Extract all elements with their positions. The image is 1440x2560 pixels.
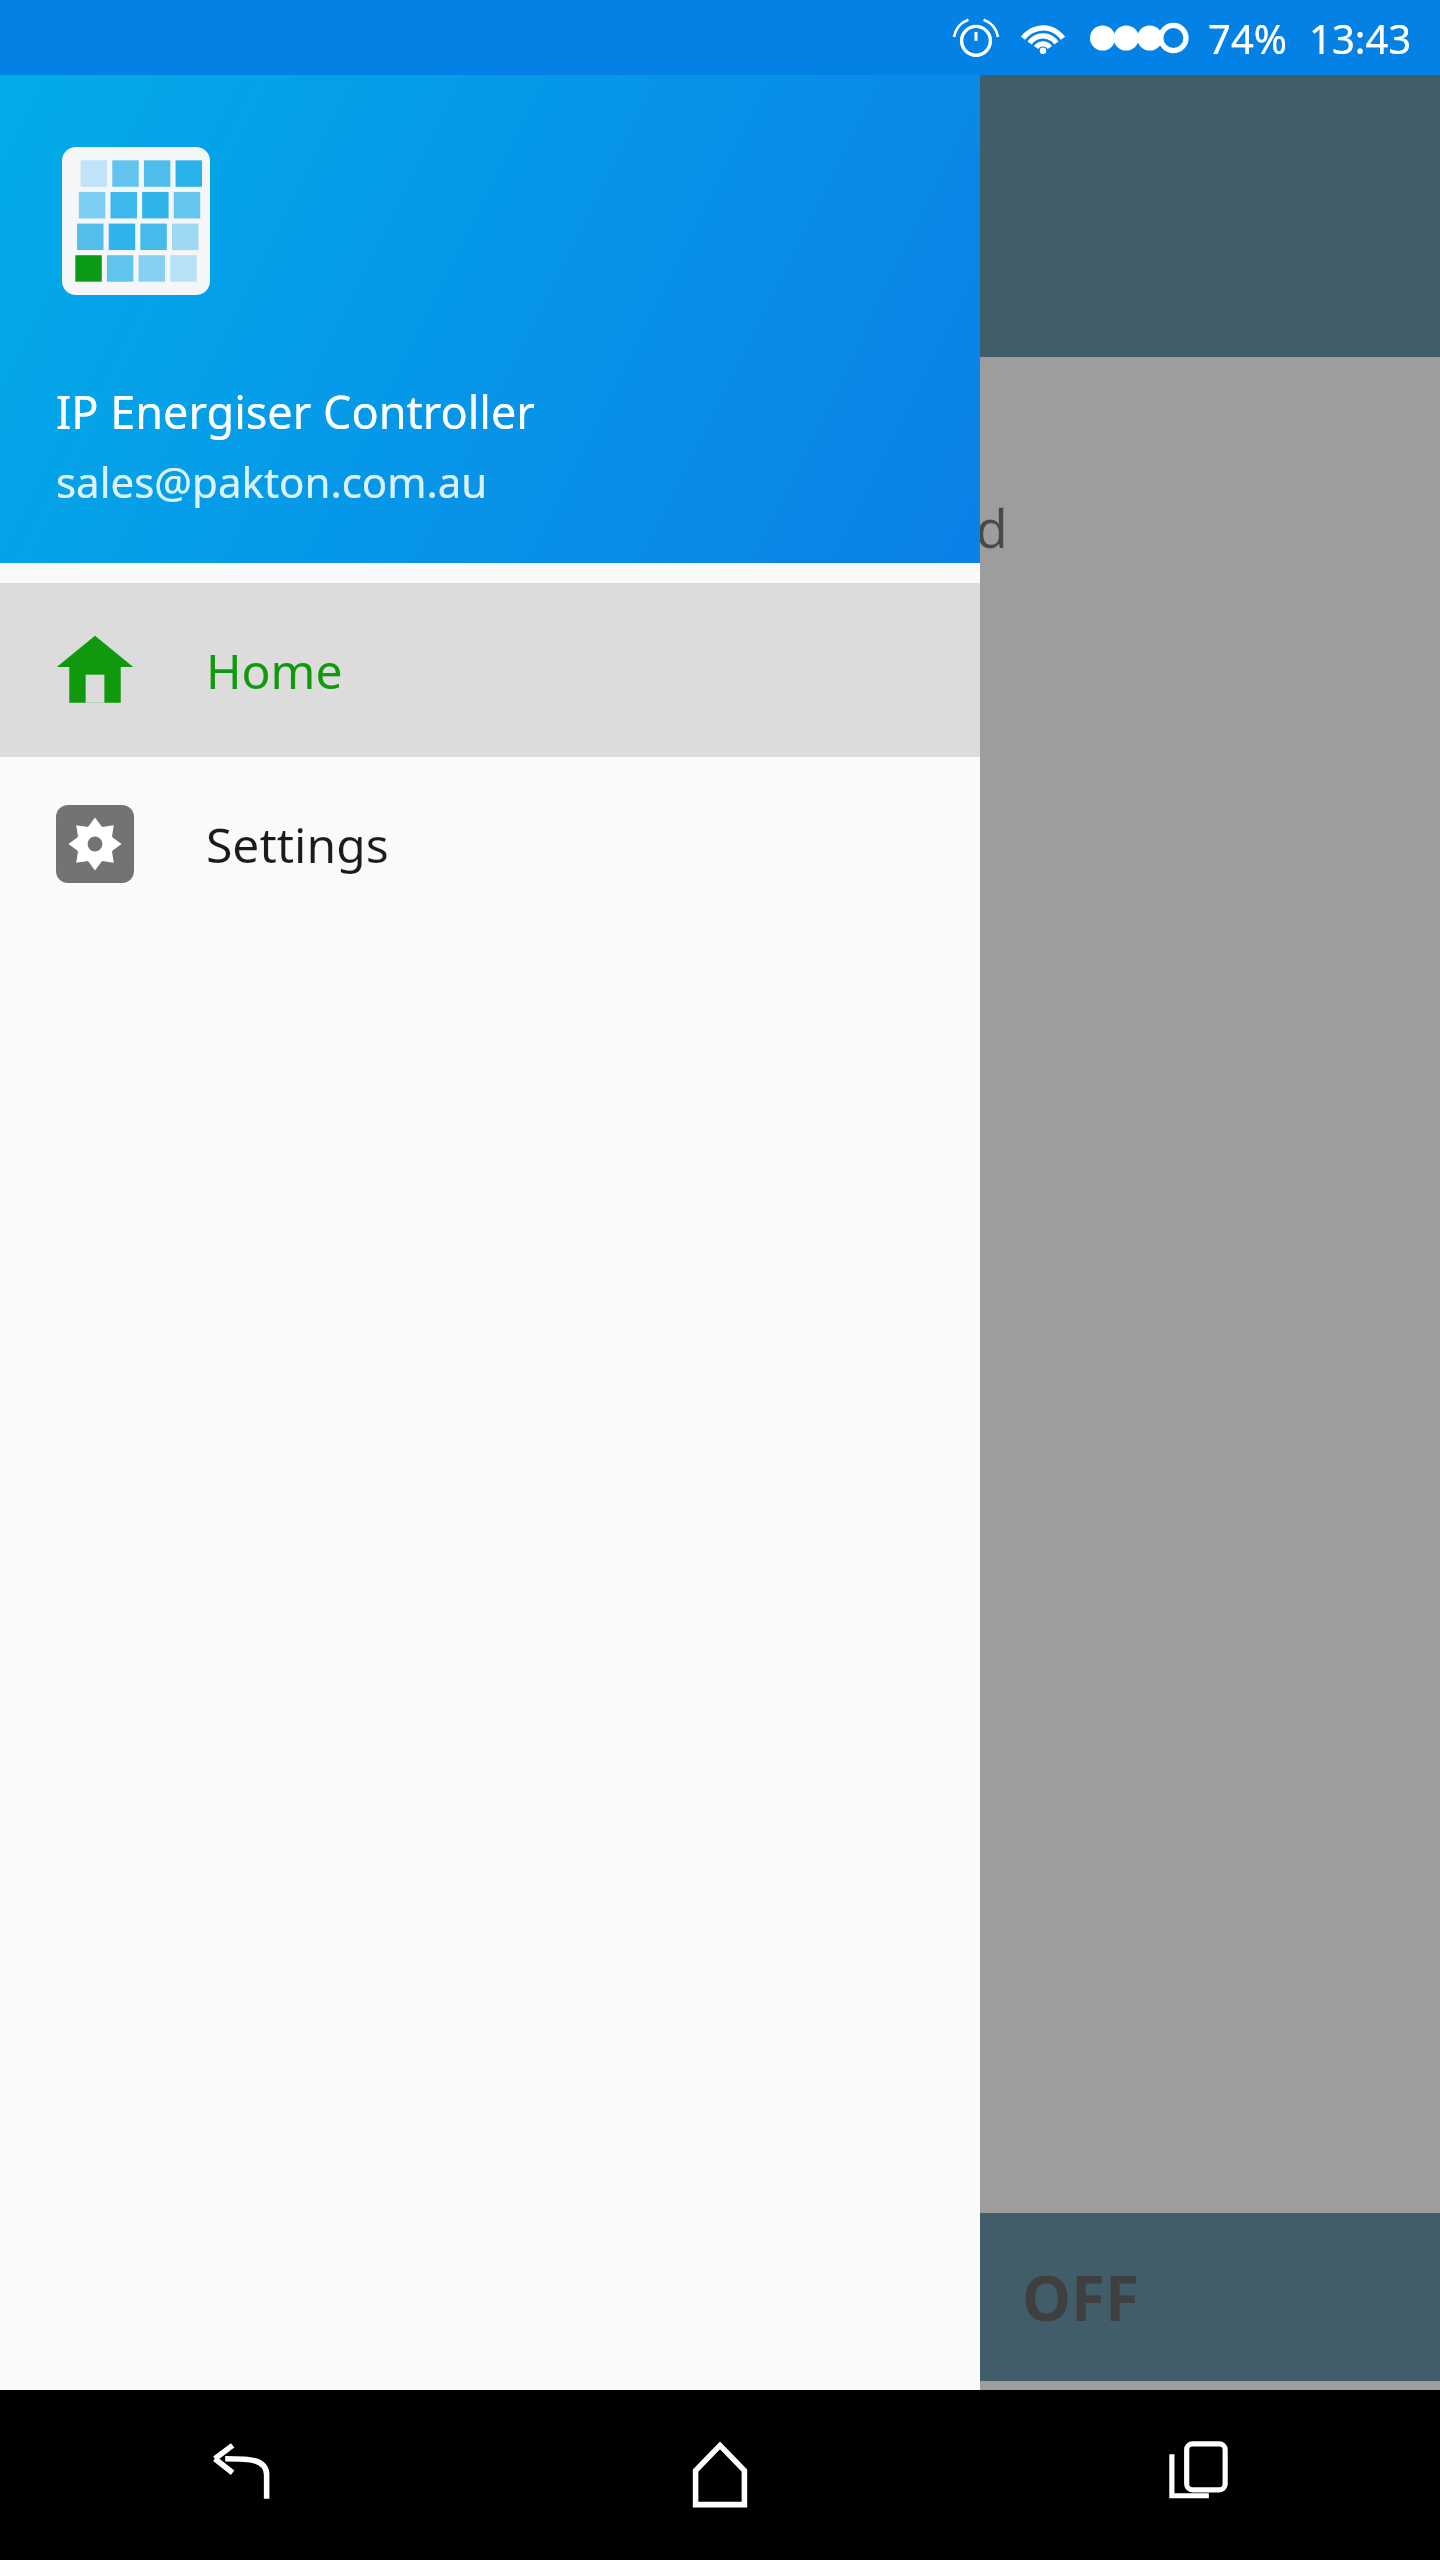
staticText: 13:43 [1309, 11, 1412, 65]
staticText: sales@pakton.com.au [56, 453, 488, 510]
staticText: Settings [206, 812, 389, 877]
button[interactable]: Recent apps [960, 2390, 1440, 2560]
button[interactable]: OFF [980, 2213, 1440, 2381]
staticText: 74% [1208, 11, 1287, 65]
other: App icon [62, 147, 210, 295]
other: Home [56, 631, 134, 709]
staticText: Fence Guard [700, 492, 1008, 563]
other: Settings [56, 805, 134, 883]
button[interactable]: Home [480, 2390, 960, 2560]
button[interactable]: Settings [0, 757, 980, 931]
button[interactable]: Back [0, 2390, 480, 2560]
staticText: OFF [1022, 2255, 1140, 2339]
button[interactable]: Home [0, 583, 980, 757]
staticText: Home [206, 638, 343, 703]
staticText: IP Energiser Controller [56, 381, 535, 442]
